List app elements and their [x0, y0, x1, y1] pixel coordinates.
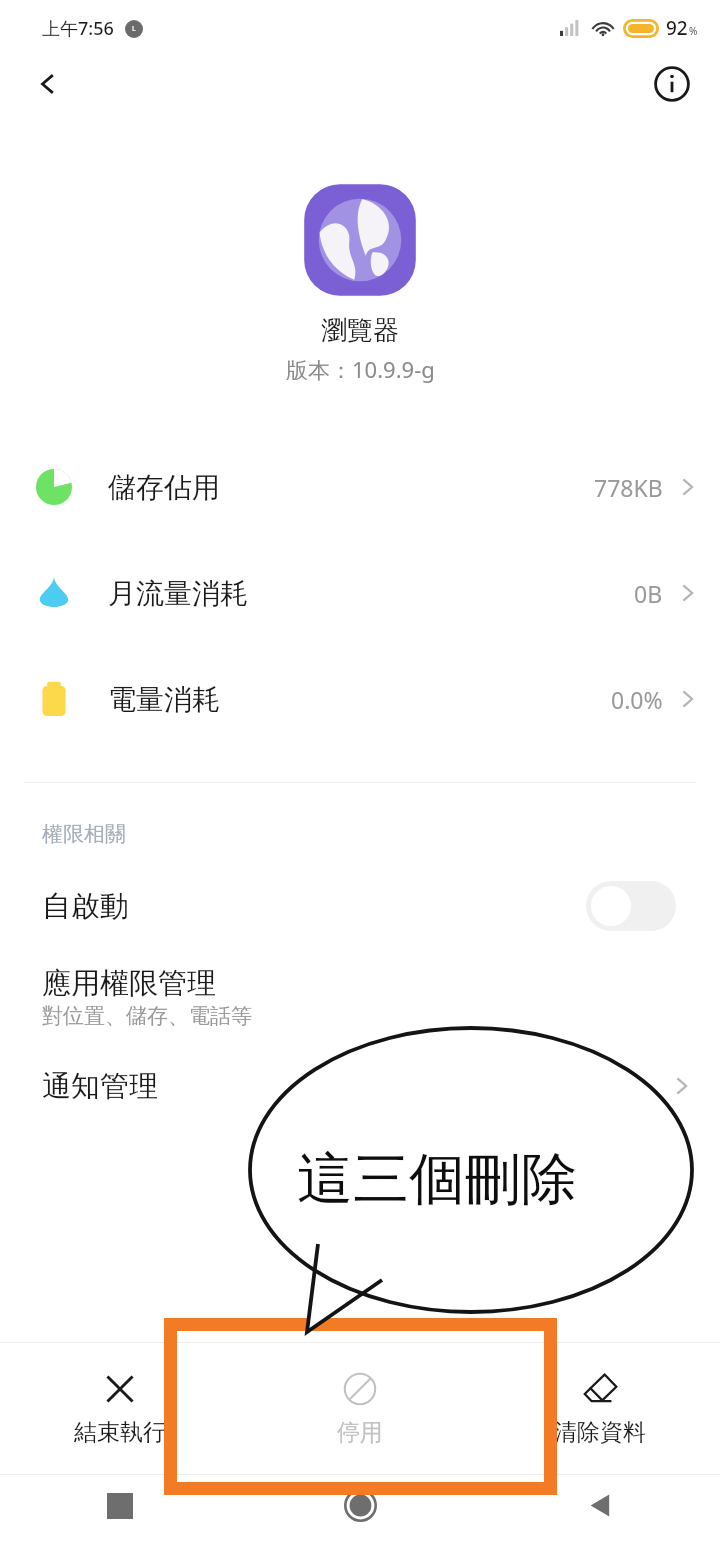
- staticText: L: [132, 24, 136, 34]
- button[interactable]: 清除資料: [480, 1343, 720, 1474]
- staticText: 0B: [634, 578, 663, 609]
- button[interactable]: App info: [646, 58, 698, 110]
- button[interactable]: [586, 881, 676, 931]
- button[interactable]: 結束執行: [0, 1343, 240, 1474]
- staticText: 自啟動: [42, 888, 129, 925]
- button[interactable]: 自啟動: [0, 869, 720, 943]
- staticText: 這三個刪除: [297, 1144, 577, 1215]
- staticText: 應用權限管理: [42, 965, 216, 1002]
- button[interactable]: Recents: [0, 1475, 240, 1560]
- staticText: %: [689, 24, 698, 38]
- button[interactable]: Back: [22, 58, 74, 110]
- button[interactable]: 停用: [240, 1343, 480, 1474]
- staticText: 版本：10.9.9-g: [286, 354, 435, 384]
- staticText: 0.0%: [611, 684, 663, 715]
- staticText: 對位置、儲存、電話等: [42, 1003, 252, 1029]
- staticText: 月流量消耗: [108, 576, 248, 611]
- staticText: 電量消耗: [108, 682, 220, 717]
- staticText: 92: [666, 15, 688, 41]
- staticText: 上午7:56: [42, 16, 114, 41]
- button[interactable]: Home: [240, 1475, 480, 1560]
- staticText: 儲存佔用: [108, 470, 220, 505]
- button[interactable]: Back: [480, 1475, 720, 1560]
- staticText: 結束執行: [74, 1418, 166, 1447]
- staticText: 清除資料: [554, 1418, 646, 1447]
- button[interactable]: 儲存佔用: [0, 434, 720, 540]
- staticText: 778KB: [594, 472, 663, 503]
- staticText: 通知管理: [42, 1068, 158, 1105]
- button[interactable]: 月流量消耗: [0, 540, 720, 646]
- button[interactable]: 電量消耗: [0, 646, 720, 752]
- button[interactable]: 通知管理: [0, 1055, 720, 1117]
- staticText: 權限相關: [42, 821, 126, 847]
- button[interactable]: 應用權限管理: [0, 965, 720, 1029]
- staticText: 停用: [337, 1418, 383, 1447]
- staticText: 瀏覽器: [321, 314, 399, 347]
